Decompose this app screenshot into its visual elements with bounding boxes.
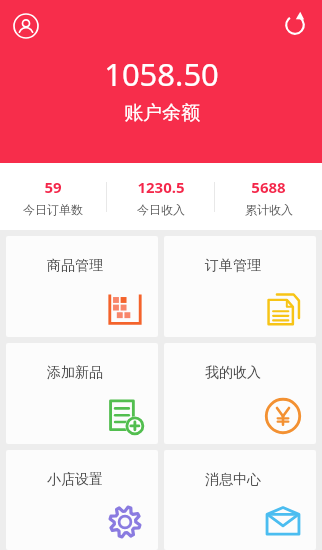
staticText: 59 — [44, 177, 62, 197]
button[interactable]: 添加新品 — [6, 343, 158, 444]
button[interactable]: Profile — [8, 8, 44, 44]
staticText: 商品管理 — [47, 257, 103, 275]
staticText: 消息中心 — [205, 471, 261, 489]
button[interactable]: 订单管理 — [164, 236, 316, 337]
staticText: 今日收入 — [137, 202, 185, 217]
staticText: 订单管理 — [205, 257, 261, 275]
button[interactable]: 59 — [0, 163, 106, 230]
staticText: 5688 — [251, 177, 286, 197]
staticText: 小店设置 — [47, 471, 103, 489]
button[interactable]: 商品管理 — [6, 236, 158, 337]
button[interactable]: 我的收入 — [164, 343, 316, 444]
staticText: 1230.5 — [137, 177, 185, 197]
staticText: 我的收入 — [205, 364, 261, 382]
button[interactable]: Refresh — [278, 8, 312, 42]
staticText: 账户余额 — [124, 101, 200, 125]
staticText: 1058.50 — [104, 53, 219, 95]
staticText: 累计收入 — [245, 202, 293, 217]
button[interactable]: 消息中心 — [164, 450, 316, 550]
staticText: 添加新品 — [47, 364, 103, 382]
staticText: 今日订单数 — [23, 202, 83, 217]
button[interactable]: 1230.5 — [107, 163, 214, 230]
button[interactable]: 小店设置 — [6, 450, 158, 550]
button[interactable]: 5688 — [215, 163, 322, 230]
